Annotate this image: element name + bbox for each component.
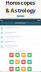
button[interactable]: Zodiac sign (21, 60, 26, 65)
button[interactable]: Zodiac sign (15, 67, 20, 72)
staticText: Horoscopes (5, 0, 35, 6)
button[interactable] (0, 40, 41, 44)
button[interactable]: Search horoscopes (0, 22, 41, 24)
button[interactable]: Zodiac sign (15, 60, 20, 65)
button[interactable]: Zodiac sign (21, 53, 26, 58)
button[interactable] (0, 35, 41, 40)
button[interactable]: Zodiac sign (27, 67, 32, 72)
button[interactable]: Zodiac sign (27, 60, 32, 65)
staticText: & Astrology (5, 7, 35, 14)
button[interactable] (0, 26, 41, 31)
button[interactable]: Zodiac sign (27, 53, 32, 58)
button[interactable] (0, 31, 41, 35)
button[interactable]: Zodiac sign (9, 53, 14, 58)
button[interactable]: Zodiac sign (15, 53, 20, 58)
button[interactable]: Zodiac sign (9, 60, 14, 65)
button[interactable] (0, 44, 41, 49)
button[interactable]: Zodiac sign (21, 67, 26, 72)
button[interactable]: Zodiac sign (9, 67, 14, 72)
